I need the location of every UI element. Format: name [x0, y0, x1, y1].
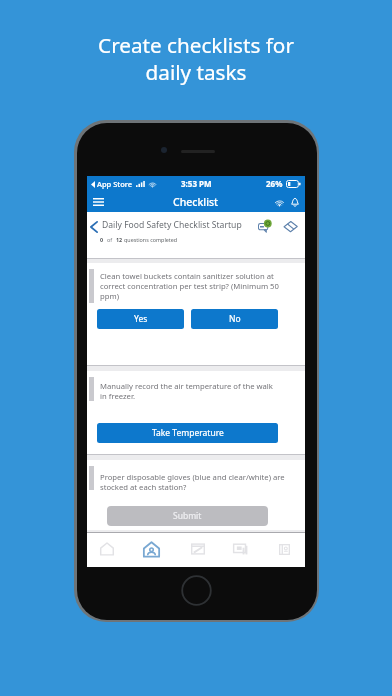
button[interactable]: Menu: [87, 191, 109, 212]
button[interactable]: Clear answers: [282, 218, 299, 235]
staticText: Proper disposable gloves (blue and clear…: [100, 472, 290, 492]
button[interactable]: Yes: [97, 309, 184, 329]
button[interactable]: Reports: [224, 533, 258, 567]
button[interactable]: Checklists: [134, 533, 168, 567]
staticText: Create checklists for daily tasks: [0, 31, 392, 86]
staticText: Clean towel buckets contain sanitizer so…: [100, 271, 290, 301]
staticText: questions completed: [124, 236, 178, 243]
button[interactable]: Submit: [107, 506, 268, 526]
staticText: Daily Food Safety Checklist Startup: [102, 219, 242, 231]
staticText: Submit: [173, 510, 202, 522]
staticText: 3:53 PM: [181, 178, 212, 189]
staticText: Manually record the air temperature of t…: [100, 381, 290, 401]
button[interactable]: Wifi status: [273, 195, 286, 209]
staticText: of: [107, 236, 113, 243]
staticText: 26%: [266, 178, 283, 189]
staticText: 0: [100, 236, 104, 243]
button[interactable]: Take Temperature: [97, 423, 278, 443]
staticText: Checklist: [173, 195, 219, 209]
staticText: 12: [116, 236, 123, 243]
button[interactable]: Comments: [256, 218, 273, 235]
button[interactable]: Notifications: [289, 195, 300, 209]
staticText: Yes: [134, 313, 148, 325]
button[interactable]: Home: [90, 533, 124, 567]
button[interactable]: Back: [87, 217, 101, 237]
button[interactable]: Contacts: [267, 533, 301, 567]
staticText: Take Temperature: [152, 427, 224, 439]
button[interactable]: Forms: [181, 533, 215, 567]
staticText: App Store: [97, 179, 133, 189]
button[interactable]: No: [191, 309, 278, 329]
staticText: No: [229, 313, 241, 325]
